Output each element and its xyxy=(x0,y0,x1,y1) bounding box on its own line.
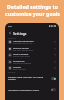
button[interactable]: Service Setup xyxy=(5,45,59,52)
other: Open xyxy=(54,41,56,43)
other: Open xyxy=(54,48,56,50)
staticText: Toolkit xyxy=(13,65,21,68)
staticText: Choose a program xyxy=(13,62,32,65)
staticText: Count your steps xyxy=(13,55,30,58)
button[interactable]: Programs xyxy=(5,58,59,65)
button[interactable]: Display step counter on home screen xyxy=(5,74,59,82)
staticText: Set your weekly plan xyxy=(13,49,34,52)
button[interactable]: Staff Counter xyxy=(5,51,59,58)
staticText: Detailed settings to xyxy=(7,3,58,10)
staticText: Staff Counter xyxy=(13,52,29,55)
button[interactable]: Back xyxy=(7,30,12,35)
staticText: Display step counter on home screen xyxy=(8,75,49,81)
staticText: Update Reminder xyxy=(13,39,34,42)
staticText: Service Setup xyxy=(13,46,29,49)
other: Open xyxy=(54,67,56,69)
button[interactable]: Toolkit xyxy=(5,64,59,71)
staticText: Programs xyxy=(13,59,25,62)
staticText: Advance notification alerts xyxy=(8,88,49,91)
staticText: 9:41 xyxy=(8,25,13,28)
other: Open xyxy=(54,61,56,63)
button[interactable]: Update Reminder xyxy=(5,38,59,45)
other: Open xyxy=(54,54,56,56)
staticText: Settings xyxy=(13,31,27,35)
staticText: customize your goals xyxy=(5,10,60,17)
staticText: Everyday 08:00 AM xyxy=(13,42,32,45)
staticText: Service xyxy=(8,71,16,74)
staticText: Extra utilities xyxy=(13,68,26,71)
staticText: General xyxy=(8,37,17,40)
button[interactable]: Advance notification alerts xyxy=(5,85,59,93)
